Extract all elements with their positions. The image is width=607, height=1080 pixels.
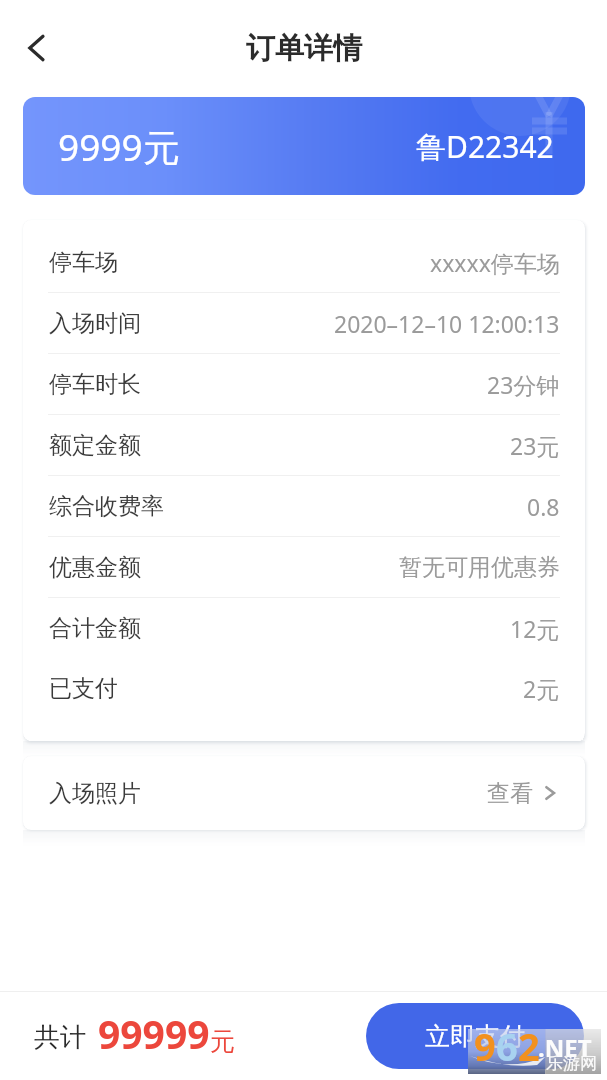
staticText: 12元 (510, 613, 560, 644)
staticText: 共计 (34, 1021, 86, 1054)
staticText: 额定金额 (49, 431, 141, 460)
staticText: 2020–12–10 12:00:13 (334, 308, 560, 339)
staticText: 乐游网 (546, 1053, 597, 1074)
staticText: 立即支付 (425, 1021, 525, 1052)
button[interactable]: 9999元 (23, 97, 585, 195)
staticText: xxxxx停车场 (430, 247, 560, 278)
staticText: 订单详情 (246, 30, 362, 67)
button[interactable]: 综合收费率 (23, 476, 585, 536)
button[interactable]: Back (13, 24, 61, 72)
staticText: 已支付 (49, 674, 118, 703)
button[interactable]: 合计金额 (23, 598, 585, 658)
staticText: 23分钟 (487, 369, 560, 400)
button[interactable]: 入场时间 (23, 293, 585, 353)
staticText: 入场照片 (49, 779, 141, 808)
staticText: 合计金额 (49, 614, 141, 643)
button[interactable]: 立即支付 (366, 1003, 584, 1069)
staticText: 优惠金额 (49, 553, 141, 582)
staticText: 0.8 (527, 491, 560, 522)
staticText: 鲁D22342 (416, 126, 554, 167)
staticText: 23元 (510, 430, 560, 461)
staticText: 暂无可用优惠券 (399, 553, 560, 582)
staticText: 入场时间 (49, 309, 141, 338)
button[interactable]: 优惠金额 (23, 537, 585, 597)
staticText: 6 (496, 1020, 518, 1065)
button[interactable]: 停车场 (23, 232, 585, 292)
button[interactable]: 已支付 (23, 658, 585, 718)
staticText: 停车场 (49, 248, 118, 277)
button[interactable]: 入场照片 (23, 756, 585, 830)
staticText: 2元 (523, 673, 560, 704)
staticText: 9 (474, 1020, 496, 1065)
button[interactable]: 额定金额 (23, 415, 585, 475)
staticText: 元 (210, 1026, 235, 1057)
staticText: .NET (538, 1031, 592, 1064)
staticText: 99999 (98, 1007, 210, 1060)
staticText: 综合收费率 (49, 492, 164, 521)
button[interactable]: 停车时长 (23, 354, 585, 414)
staticText: 查看 (487, 779, 533, 808)
staticText: 停车时长 (49, 370, 141, 399)
staticText: 9999元 (58, 121, 180, 172)
staticText: 2 (518, 1020, 540, 1065)
